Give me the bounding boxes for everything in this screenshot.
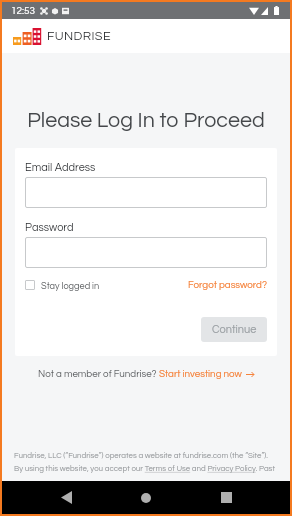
staticText: 12:53 <box>11 6 36 16</box>
staticText: FUNDRISE <box>47 30 111 43</box>
staticText: Fundrise, LLC (“Fundrise”) operates a we… <box>14 452 268 460</box>
button[interactable]: Forgot password? <box>188 280 267 290</box>
staticText: By using this website, you accept our Te… <box>14 465 275 473</box>
staticText: Start investing now <box>159 369 242 379</box>
button[interactable]: Fundrise home <box>13 28 111 45</box>
staticText: Password <box>25 222 74 233</box>
staticText: Continue <box>212 324 257 335</box>
button[interactable]: Home <box>120 482 172 513</box>
button[interactable]: Stay logged in <box>25 280 100 290</box>
button[interactable]: Back <box>40 482 92 513</box>
staticText: Stay logged in <box>41 281 100 290</box>
staticText: Email Address <box>25 162 96 173</box>
button[interactable]: Text field <box>25 177 267 208</box>
button[interactable]: Continue <box>201 317 267 342</box>
staticText: Not a member of Fundrise? <box>38 369 159 379</box>
staticText: Please Log In to Proceed <box>2 109 290 131</box>
button[interactable]: Text field <box>25 237 267 268</box>
button[interactable]: Recent apps <box>200 482 252 513</box>
button[interactable]: Start investing now <box>159 369 254 379</box>
